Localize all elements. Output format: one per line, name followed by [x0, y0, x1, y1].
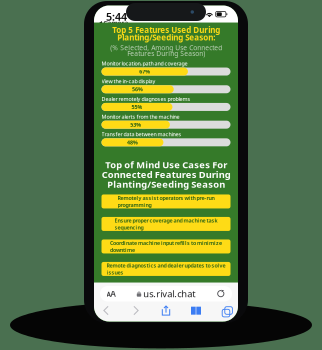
staticText: 67% — [139, 68, 150, 75]
staticText: View the in-cab display — [101, 78, 155, 85]
staticText: Top 5 Features Used During Planting/Seed… — [112, 24, 220, 43]
button[interactable]: Forward — [125, 302, 147, 318]
staticText: Camera — [103, 19, 128, 28]
staticText: Ensure proper coverage and machine task … — [114, 217, 217, 231]
staticText: Remote diagnostics and dealer updates to… — [106, 262, 225, 276]
staticText: Remotely assist operators with pre-run p… — [117, 194, 214, 209]
staticText: Coordinate machine input refills to mini… — [110, 239, 222, 254]
button[interactable]: Share — [155, 302, 177, 318]
button[interactable]: Bookmarks — [185, 302, 207, 318]
button[interactable]: Tabs — [215, 302, 237, 318]
button[interactable]: Coordinate machine input refills to mini… — [101, 239, 230, 253]
staticText: 56% — [132, 86, 143, 93]
button[interactable]: Remote diagnostics and dealer updates to… — [101, 262, 230, 276]
staticText: 5:44 — [106, 9, 127, 24]
staticText: 48% — [127, 139, 138, 146]
staticText: Transfer data between machines — [101, 131, 181, 138]
staticText: Monitor location, path and coverage — [101, 60, 187, 67]
staticText: ᴀA — [106, 288, 115, 299]
button[interactable]: Camera — [99, 19, 128, 28]
staticText: 53% — [130, 121, 141, 128]
button[interactable]: Remotely assist operators with pre-run p… — [101, 194, 230, 208]
staticText: (% Selected, Among Use Connected Feature… — [110, 43, 222, 58]
staticText: Monitor alerts from the machine — [101, 113, 179, 120]
staticText: Top of Mind Use Cases For Connected Feat… — [101, 158, 230, 190]
staticText: 55% — [131, 103, 142, 110]
staticText: Dealer remotely diagnoses problems — [101, 95, 190, 102]
button[interactable]: Reload — [213, 287, 229, 301]
button[interactable]: Back — [95, 302, 117, 318]
button[interactable]: Ensure proper coverage and machine task … — [101, 217, 230, 231]
button[interactable]: Page settings — [103, 287, 119, 301]
staticText: us.rival.chat — [143, 288, 195, 300]
